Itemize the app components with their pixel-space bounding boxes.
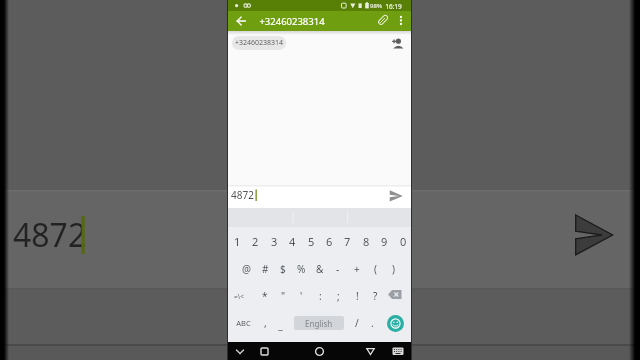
button[interactable]: 0 [394, 229, 412, 253]
staticText: ( [374, 262, 377, 276]
button[interactable] [395, 12, 407, 30]
button[interactable] [384, 186, 406, 206]
staticText: 6 [326, 234, 333, 249]
staticText: & [316, 262, 324, 276]
button[interactable] [230, 311, 256, 335]
button[interactable] [363, 344, 378, 359]
button[interactable]: 2 [246, 229, 264, 253]
staticText: 1 [234, 234, 241, 249]
button[interactable]: $ [274, 257, 292, 281]
button[interactable] [229, 284, 249, 308]
staticText: 98% [370, 2, 382, 10]
staticText: ? [373, 289, 378, 303]
button[interactable]: 7 [338, 229, 356, 253]
staticText: 4872 [231, 188, 254, 202]
button[interactable]: @ [237, 257, 255, 281]
staticText: 5 [308, 234, 315, 249]
staticText: ' [300, 289, 303, 303]
button[interactable] [387, 315, 404, 332]
button[interactable]: ? [366, 284, 384, 308]
button[interactable]: 1 [228, 229, 246, 253]
button[interactable] [386, 287, 406, 304]
button[interactable]: - [329, 257, 347, 281]
button[interactable]: +32460238314 [232, 36, 286, 50]
staticText: 0 [400, 234, 407, 249]
button[interactable] [312, 344, 327, 359]
staticText: 4872 [13, 213, 87, 257]
staticText: / [355, 316, 359, 330]
button[interactable]: : [311, 284, 329, 308]
button[interactable]: ) [384, 257, 402, 281]
button[interactable] [271, 311, 289, 335]
staticText: ; [337, 289, 340, 303]
staticText: 3 [271, 234, 278, 249]
button[interactable]: / [348, 311, 366, 335]
button[interactable] [375, 12, 391, 28]
staticText: 4 [289, 234, 296, 249]
button[interactable]: ' [292, 284, 310, 308]
staticText: ! [356, 289, 359, 303]
staticText: : [319, 289, 322, 303]
button[interactable]: 6 [320, 229, 338, 253]
button[interactable] [233, 13, 250, 29]
staticText: - [336, 262, 340, 276]
button[interactable]: 4 [283, 229, 301, 253]
staticText: 2 [252, 234, 259, 249]
button[interactable]: 9 [375, 229, 393, 253]
staticText: 8 [363, 234, 370, 249]
staticText: 9 [381, 234, 388, 249]
staticText: +32460238314 [259, 15, 325, 28]
staticText: +32460238314 [235, 38, 284, 48]
staticText: 16:19 [385, 2, 402, 11]
staticText: English [305, 318, 333, 329]
button[interactable]: ( [366, 257, 384, 281]
staticText: _ [278, 318, 283, 332]
staticText: ABC [236, 318, 251, 328]
button[interactable]: ! [348, 284, 366, 308]
button[interactable] [233, 344, 247, 358]
button[interactable] [388, 36, 406, 51]
staticText: * [262, 289, 268, 303]
staticText: % [297, 262, 306, 276]
button[interactable]: * [256, 284, 274, 308]
button[interactable] [257, 344, 272, 359]
button[interactable]: & [311, 257, 329, 281]
button[interactable]: 8 [357, 229, 375, 253]
button[interactable]: # [256, 257, 274, 281]
button[interactable]: " [274, 284, 292, 308]
button[interactable]: . [363, 311, 381, 335]
button[interactable]: 5 [302, 229, 320, 253]
staticText: =\< [234, 292, 244, 301]
button[interactable]: % [292, 257, 310, 281]
staticText: , [264, 316, 267, 330]
button[interactable]: English [294, 316, 344, 330]
staticText: . [371, 316, 374, 330]
staticText: " [281, 289, 286, 303]
staticText: + [354, 262, 360, 276]
button[interactable] [391, 345, 405, 357]
staticText: ) [392, 262, 395, 276]
button[interactable]: ; [329, 284, 347, 308]
button[interactable]: + [348, 257, 366, 281]
staticText: $ [280, 262, 286, 276]
staticText: @ [242, 262, 251, 276]
button[interactable]: , [256, 311, 274, 335]
staticText: # [262, 262, 269, 276]
staticText: 7 [344, 234, 351, 249]
button[interactable]: 3 [265, 229, 283, 253]
